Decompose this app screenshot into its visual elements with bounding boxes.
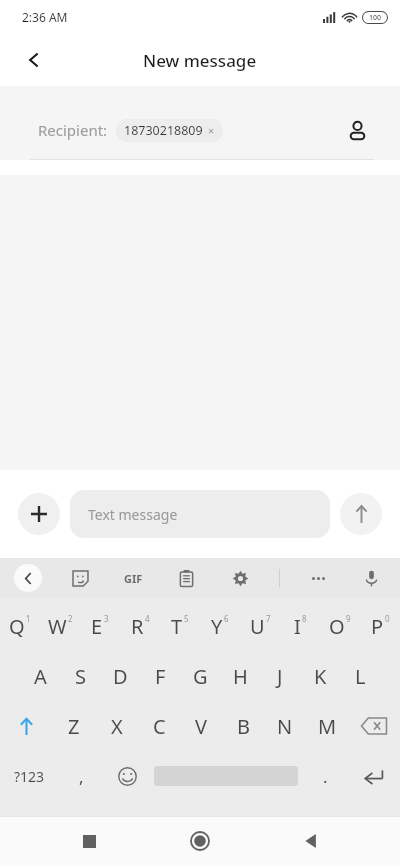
button[interactable]: 18730218809 bbox=[116, 119, 223, 142]
button[interactable]: A bbox=[20, 654, 60, 698]
staticText: 2:36 AM bbox=[22, 9, 68, 25]
staticText: U bbox=[250, 613, 265, 640]
staticText: S bbox=[75, 663, 86, 690]
staticText: F bbox=[155, 663, 166, 690]
button[interactable]: Back bbox=[12, 38, 56, 82]
button[interactable]: O bbox=[320, 604, 360, 648]
button[interactable]: Text message bbox=[70, 490, 330, 538]
staticText: E bbox=[91, 613, 103, 640]
staticText: G bbox=[193, 663, 208, 690]
button[interactable]: T bbox=[160, 604, 200, 648]
button[interactable]: Voice input bbox=[356, 563, 386, 593]
staticText: New message bbox=[143, 49, 257, 72]
button[interactable]: G bbox=[180, 654, 220, 698]
staticText: J bbox=[277, 663, 283, 690]
staticText: B bbox=[237, 713, 250, 740]
button[interactable]: X bbox=[95, 704, 138, 748]
staticText: I bbox=[294, 613, 301, 640]
button[interactable]: E bbox=[80, 604, 120, 648]
button[interactable]: V bbox=[180, 704, 222, 748]
staticText: 7 bbox=[266, 613, 271, 624]
button[interactable]: U bbox=[240, 604, 280, 648]
button[interactable]: B bbox=[222, 704, 264, 748]
button[interactable]: M bbox=[306, 704, 348, 748]
button[interactable]: Add attachment bbox=[18, 493, 60, 535]
staticText: P bbox=[371, 613, 384, 640]
staticText: 4 bbox=[145, 613, 150, 624]
button[interactable]: Send bbox=[340, 493, 382, 535]
button[interactable]: P bbox=[360, 604, 400, 648]
button[interactable]: Back bbox=[289, 819, 333, 863]
button[interactable]: Home bbox=[178, 819, 222, 863]
staticText: 3 bbox=[104, 613, 109, 624]
staticText: R bbox=[131, 613, 144, 640]
staticText: 9 bbox=[346, 613, 351, 624]
staticText: D bbox=[113, 663, 128, 690]
staticText: ?123 bbox=[14, 767, 45, 786]
staticText: M bbox=[318, 713, 337, 740]
button[interactable]: Shift bbox=[0, 704, 52, 748]
staticText: Y bbox=[211, 613, 223, 640]
button[interactable]: D bbox=[100, 654, 140, 698]
staticText: K bbox=[314, 663, 327, 690]
button[interactable]: F bbox=[140, 654, 180, 698]
button[interactable]: J bbox=[260, 654, 300, 698]
button[interactable]: W bbox=[40, 604, 80, 648]
staticText: O bbox=[329, 613, 345, 640]
button[interactable]: R bbox=[120, 604, 160, 648]
button[interactable]: Z bbox=[52, 704, 95, 748]
button[interactable]: Emoji bbox=[104, 754, 150, 798]
staticText: 0 bbox=[385, 613, 390, 624]
staticText: 18730218809 bbox=[124, 122, 203, 139]
staticText: Text message bbox=[88, 505, 178, 524]
staticText: T bbox=[171, 613, 183, 640]
button[interactable]: Q bbox=[0, 604, 40, 648]
button[interactable]: . bbox=[302, 754, 348, 798]
button[interactable]: L bbox=[340, 654, 380, 698]
staticText: W bbox=[48, 613, 67, 640]
button[interactable]: GIF bbox=[118, 563, 148, 593]
button[interactable]: H bbox=[220, 654, 260, 698]
button[interactable]: Clipboard bbox=[171, 563, 201, 593]
button[interactable]: K bbox=[300, 654, 340, 698]
button[interactable]: S bbox=[60, 654, 100, 698]
staticText: Z bbox=[68, 713, 80, 740]
staticText: 6 bbox=[224, 613, 229, 624]
button[interactable]: Delete bbox=[348, 704, 400, 748]
button[interactable]: Settings bbox=[225, 563, 255, 593]
staticText: Q bbox=[9, 613, 25, 640]
button[interactable]: ?123 bbox=[0, 754, 58, 798]
button[interactable]: Enter bbox=[348, 754, 400, 798]
staticText: 100 bbox=[369, 13, 382, 23]
button[interactable]: Recents bbox=[67, 819, 111, 863]
button[interactable]: Y bbox=[200, 604, 240, 648]
button[interactable]: , bbox=[58, 754, 104, 798]
staticText: Recipient: bbox=[38, 120, 108, 140]
staticText: , bbox=[79, 765, 84, 788]
staticText: C bbox=[153, 713, 166, 740]
staticText: 1 bbox=[26, 613, 31, 624]
button[interactable]: N bbox=[264, 704, 306, 748]
staticText: 8 bbox=[302, 613, 307, 624]
staticText: N bbox=[277, 713, 293, 740]
staticText: L bbox=[355, 663, 366, 690]
staticText: H bbox=[233, 663, 248, 690]
staticText: V bbox=[195, 713, 207, 740]
button[interactable]: C bbox=[138, 704, 180, 748]
staticText: 5 bbox=[184, 613, 189, 624]
button[interactable]: I bbox=[280, 604, 320, 648]
staticText: GIF bbox=[124, 571, 143, 586]
staticText: × bbox=[208, 123, 215, 138]
staticText: X bbox=[111, 713, 123, 740]
staticText: A bbox=[34, 663, 47, 690]
staticText: . bbox=[323, 765, 328, 788]
button[interactable]: Stickers bbox=[65, 563, 95, 593]
button[interactable]: Choose contact bbox=[340, 113, 374, 147]
staticText: 2 bbox=[68, 613, 73, 624]
button[interactable]: More bbox=[304, 564, 332, 592]
button[interactable]: Close toolbar bbox=[14, 564, 42, 592]
